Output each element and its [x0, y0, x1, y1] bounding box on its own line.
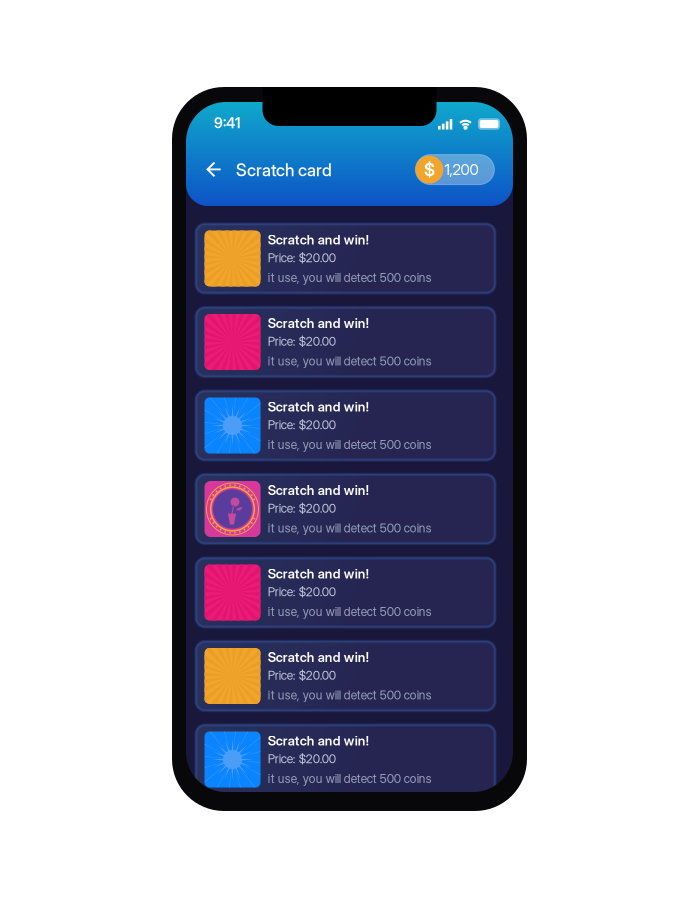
- staticText: Scratch and win!: [268, 399, 369, 415]
- staticText: it use, you will detect 500 coins: [268, 437, 432, 452]
- staticText: Scratch and win!: [268, 649, 369, 665]
- staticText: it use, you will detect 500 coins: [268, 270, 432, 285]
- button[interactable]: Scratch and win!: [196, 224, 495, 293]
- button[interactable]: Scratch and win!: [196, 307, 495, 376]
- staticText: Price: $20.00: [268, 418, 336, 432]
- staticText: Scratch and win!: [268, 733, 369, 749]
- staticText: Price: $20.00: [268, 334, 336, 349]
- button[interactable]: Scratch and win!: [196, 558, 495, 627]
- staticText: Scratch and win!: [268, 482, 369, 498]
- button[interactable]: Scratch and win!: [196, 474, 495, 543]
- staticText: Price: $20.00: [268, 585, 336, 599]
- button[interactable]: Scratch and win!: [196, 641, 495, 710]
- button[interactable]: Scratch and win!: [196, 725, 495, 794]
- button[interactable]: $: [415, 155, 494, 185]
- staticText: Scratch card: [236, 160, 332, 180]
- staticText: 9:41: [214, 114, 240, 132]
- staticText: $: [424, 159, 435, 180]
- staticText: Price: $20.00: [268, 668, 336, 683]
- staticText: it use, you will detect 500 coins: [268, 521, 432, 535]
- staticText: Scratch and win!: [268, 315, 369, 331]
- staticText: it use, you will detect 500 coins: [268, 604, 432, 619]
- staticText: it use, you will detect 500 coins: [268, 688, 432, 702]
- staticText: it use, you will detect 500 coins: [268, 354, 432, 368]
- staticText: Price: $20.00: [268, 752, 336, 766]
- staticText: Scratch and win!: [268, 566, 369, 582]
- staticText: Price: $20.00: [268, 501, 336, 516]
- staticText: it use, you will detect 500 coins: [268, 771, 432, 786]
- button[interactable]: Back: [199, 154, 229, 184]
- staticText: Price: $20.00: [268, 251, 336, 265]
- button[interactable]: Scratch and win!: [196, 391, 495, 460]
- staticText: Scratch and win!: [268, 232, 369, 248]
- staticText: 1,200: [444, 160, 478, 179]
